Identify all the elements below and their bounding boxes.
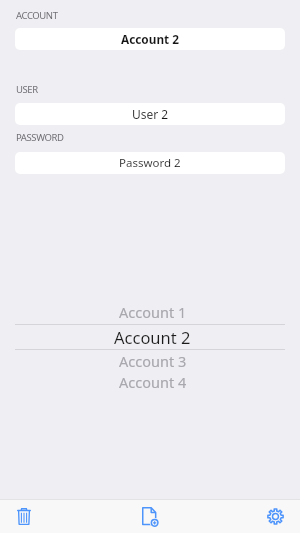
staticText: PASSWORD [16, 131, 64, 144]
button[interactable]: New document [126, 500, 174, 533]
staticText: Password 2 [119, 155, 181, 171]
staticText: Account 4 [119, 372, 187, 392]
button[interactable]: Delete [0, 500, 48, 533]
staticText: Account 3 [119, 351, 187, 371]
staticText: Account 2 [121, 31, 179, 47]
button[interactable]: User 2 [15, 103, 285, 125]
staticText: USER [16, 83, 38, 96]
staticText: ACCOUNT [16, 9, 58, 22]
button[interactable]: Settings [251, 500, 299, 533]
staticText: Account 2 [114, 326, 191, 348]
staticText: User 2 [132, 106, 169, 122]
button[interactable]: Account 3 [5, 350, 300, 372]
button[interactable]: Account 1 [5, 301, 300, 323]
staticText: Account 1 [119, 302, 187, 322]
button[interactable]: Account 2 [5, 326, 300, 348]
button[interactable]: Account 4 [5, 371, 300, 393]
button[interactable]: Account 2 [15, 28, 285, 50]
button[interactable]: Password 2 [15, 152, 285, 174]
